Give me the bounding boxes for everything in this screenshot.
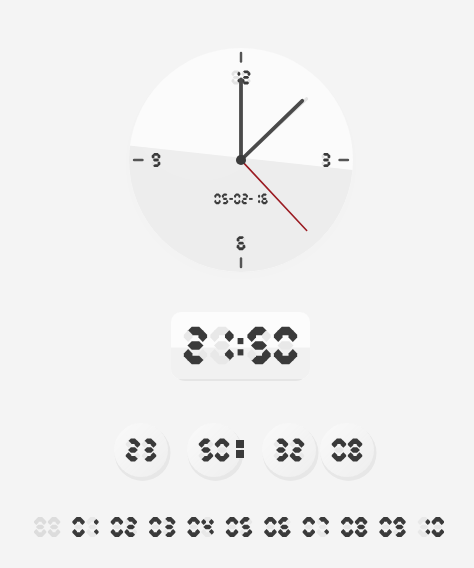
button[interactable]: Value 08 xyxy=(318,421,376,479)
button[interactable]: Value 32 xyxy=(260,421,318,479)
button[interactable]: Value 23 xyxy=(112,421,170,479)
button[interactable]: Value 50 xyxy=(185,421,243,479)
button[interactable]: Analog clock xyxy=(127,46,355,274)
button[interactable]: Digital clock 21:50 xyxy=(171,312,310,379)
